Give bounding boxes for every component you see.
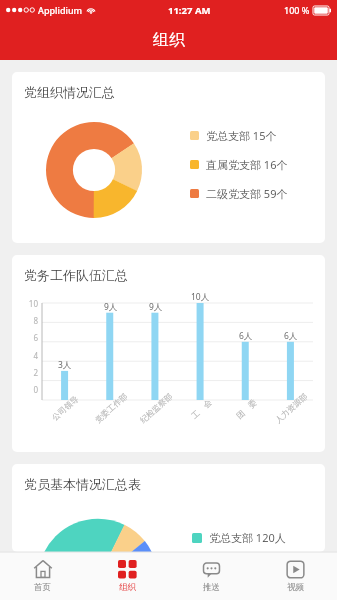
staticText: 党总支部 15个	[206, 128, 277, 143]
staticText: 纪检监察部	[138, 391, 174, 425]
staticText: Applidium	[38, 4, 83, 16]
staticText: 推送	[203, 582, 220, 593]
staticText: 公司领导	[50, 394, 80, 422]
staticText: 8	[24, 315, 38, 326]
staticText: 党总支部 120人	[209, 530, 286, 545]
staticText: 直属党支部 16个	[206, 157, 288, 172]
staticText: 0	[24, 384, 38, 395]
staticText: 党委工作部	[93, 391, 129, 425]
staticText: 6人	[239, 330, 253, 342]
staticText: 党务工作队伍汇总	[24, 267, 128, 283]
staticText: 人力资源部	[273, 391, 309, 425]
staticText: 首页	[34, 582, 51, 593]
staticText: 二级党支部 59个	[206, 186, 288, 201]
other: 推送	[202, 560, 221, 579]
button[interactable]: 推送	[169, 552, 253, 600]
staticText: 4	[24, 350, 38, 361]
staticText: 6	[24, 332, 38, 343]
other: 组织	[118, 560, 137, 579]
staticText: 9人	[104, 301, 118, 313]
staticText: 组织	[153, 30, 185, 50]
staticText: 组织	[119, 582, 136, 593]
button[interactable]: 视频	[253, 552, 337, 600]
staticText: 11:27 AM	[168, 4, 211, 17]
staticText: 工 会	[188, 396, 214, 421]
other: 首页	[33, 559, 53, 579]
staticText: 2	[24, 367, 38, 378]
button[interactable]: 首页	[0, 552, 85, 600]
staticText: 党组织情况汇总	[24, 84, 115, 100]
button[interactable]: 组织	[85, 552, 169, 600]
staticText: 9人	[149, 301, 163, 313]
staticText: 10	[24, 298, 38, 309]
staticText: 视频	[287, 582, 304, 593]
staticText: 团 委	[233, 396, 259, 421]
staticText: 100 %	[284, 4, 310, 16]
staticText: 6人	[284, 330, 298, 342]
staticText: 10人	[191, 291, 210, 303]
staticText: 党员基本情况汇总表	[24, 476, 141, 492]
other: 视频	[286, 560, 305, 579]
staticText: 3人	[58, 359, 72, 371]
